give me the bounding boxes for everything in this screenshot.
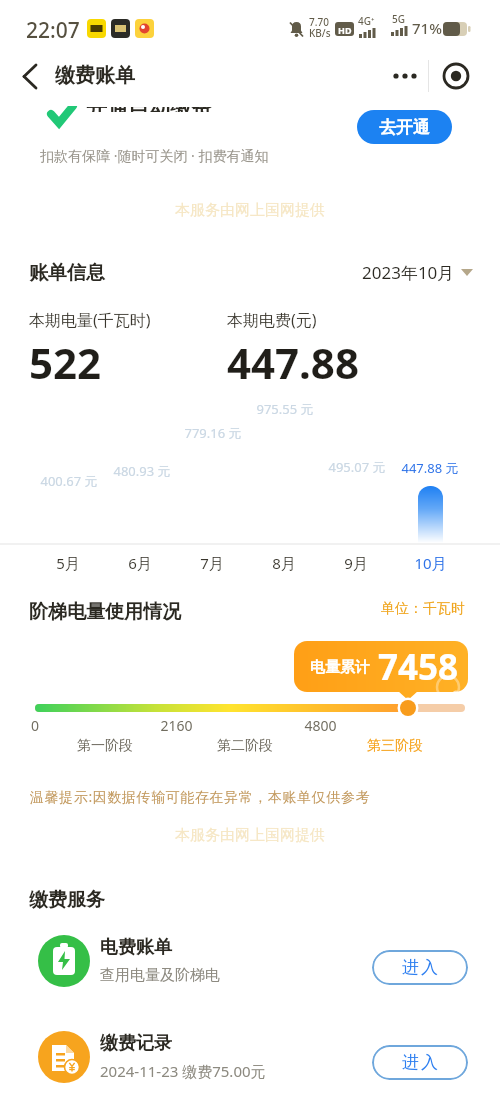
- staticText: 2160: [160, 716, 193, 735]
- staticText: 本服务由网上国网提供: [175, 826, 325, 845]
- button[interactable]: [442, 62, 470, 90]
- staticText: 400.67 元: [40, 472, 98, 490]
- staticText: 查用电量及阶梯电: [100, 966, 220, 985]
- staticText: KB/s: [309, 26, 331, 40]
- staticText: 975.55 元: [256, 400, 314, 418]
- button[interactable]: 缴费记录: [20, 1028, 480, 1090]
- staticText: 447.88 元: [401, 459, 459, 477]
- staticText: 第二阶段: [217, 737, 273, 755]
- staticText: 进入: [401, 957, 439, 978]
- staticText: 去开通: [379, 117, 430, 138]
- staticText: 阶梯电量使用情况: [29, 600, 181, 624]
- staticText: 缴费服务: [29, 888, 105, 912]
- staticText: 0: [31, 716, 40, 735]
- staticText: 480.93 元: [113, 462, 171, 480]
- staticText: HD: [338, 24, 352, 36]
- staticText: 6月: [128, 553, 152, 573]
- staticText: 2023年10月: [362, 261, 455, 284]
- staticText: 5月: [56, 553, 80, 573]
- staticText: 447.88: [227, 334, 359, 391]
- staticText: 7月: [200, 553, 224, 573]
- staticText: 7458: [378, 643, 459, 691]
- staticText: 22:07: [26, 16, 80, 45]
- staticText: 第三阶段: [367, 737, 423, 755]
- staticText: 本期电量(千瓦时): [29, 309, 151, 331]
- staticText: 第一阶段: [77, 737, 133, 755]
- button[interactable]: 电费账单: [20, 930, 480, 992]
- staticText: 5G: [392, 12, 405, 26]
- staticText: 7.70: [309, 15, 329, 29]
- staticText: 扣款有保障 ·随时可关闭 · 扣费有通知: [40, 146, 269, 165]
- button[interactable]: [22, 64, 38, 90]
- button[interactable]: 去开通: [357, 110, 452, 144]
- staticText: 10月: [414, 553, 447, 573]
- staticText: 本服务由网上国网提供: [175, 201, 325, 220]
- staticText: 8月: [272, 553, 296, 573]
- staticText: 9月: [344, 553, 368, 573]
- staticText: 电费账单: [100, 936, 172, 959]
- staticText: 温馨提示:因数据传输可能存在异常，本账单仅供参考: [30, 787, 371, 806]
- button[interactable]: [390, 64, 420, 88]
- staticText: 2024-11-23 缴费75.00元: [100, 1061, 266, 1081]
- staticText: 779.16 元: [184, 424, 242, 442]
- staticText: 单位：千瓦时: [381, 600, 465, 618]
- staticText: 71%: [412, 18, 442, 38]
- staticText: 电量累计: [310, 658, 370, 677]
- staticText: 账单信息: [29, 261, 105, 285]
- button[interactable]: 进入: [372, 1045, 468, 1080]
- staticText: 进入: [401, 1052, 439, 1073]
- button[interactable]: 进入: [372, 950, 468, 985]
- staticText: 4800: [304, 716, 337, 735]
- button[interactable]: 2023年10月: [340, 258, 475, 286]
- staticText: 缴费账单: [55, 63, 135, 88]
- staticText: 495.07 元: [328, 458, 386, 476]
- staticText: 开通自动缴费: [86, 107, 212, 112]
- staticText: 522: [29, 334, 102, 391]
- staticText: 缴费记录: [100, 1032, 172, 1055]
- staticText: 4G⁺: [358, 14, 375, 28]
- staticText: 本期电费(元): [227, 309, 317, 331]
